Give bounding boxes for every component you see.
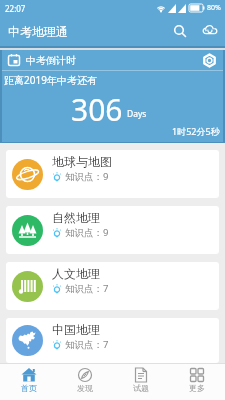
staticText: 306 [71,89,123,130]
staticText: 地球与地图 [52,154,112,169]
staticText: 1时52分5秒 [172,125,220,137]
button[interactable]: 人文地理 [6,262,219,310]
staticText: 知识点：7 [65,282,109,295]
staticText: 距离2019年中考还有 [4,73,97,87]
staticText: 中考地理通 [8,24,68,39]
button[interactable]: 首页 [0,364,57,400]
button[interactable]: 地球与地图 [6,150,219,198]
staticText: 中考倒计时 [26,54,76,67]
staticText: 知识点：9 [65,170,109,183]
button[interactable]: 自然地理 [6,206,219,254]
staticText: 试题 [133,383,149,393]
staticText: 更多 [189,383,205,393]
staticText: Days [127,108,147,120]
staticText: 22:07 [5,3,26,14]
staticText: 人文地理 [52,266,100,281]
button[interactable]: 中国地理 [6,318,219,363]
staticText: 首页 [21,383,37,393]
staticText: 80% [207,3,221,13]
staticText: 知识点：7 [65,338,109,351]
staticText: 中国地理 [52,322,100,337]
staticText: 自然地理 [52,210,100,225]
button[interactable] [165,16,195,46]
button[interactable] [199,50,219,70]
button[interactable]: 更多 [169,364,225,400]
staticText: 发现 [77,383,93,393]
button[interactable]: 试题 [113,364,169,400]
button[interactable]: 发现 [57,364,113,400]
button[interactable] [195,16,225,46]
staticText: 知识点：9 [65,226,109,239]
button[interactable]: 中考倒计时 [0,50,225,143]
